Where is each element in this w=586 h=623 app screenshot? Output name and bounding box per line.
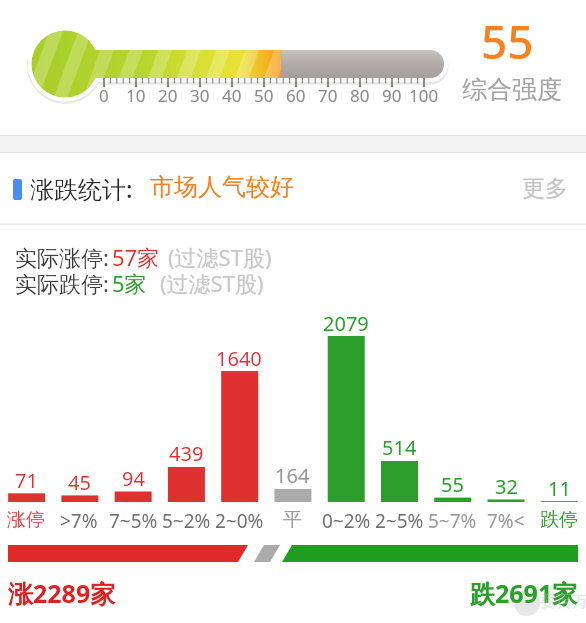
staticText: 50 — [254, 84, 274, 107]
staticText: 平 — [283, 508, 302, 532]
staticText: 1640 — [216, 345, 262, 372]
staticText: 32 — [495, 473, 518, 500]
staticText: 2~5% — [375, 508, 424, 534]
staticText: 55 — [441, 471, 464, 498]
staticText: 跌停 — [540, 508, 578, 532]
staticText: 40 — [222, 84, 242, 107]
staticText: 市场人气较好 — [150, 172, 294, 202]
staticText: 5~2% — [162, 508, 211, 534]
staticText: 80 — [350, 84, 370, 107]
staticText: 45 — [68, 469, 91, 496]
staticText: 0~2% — [322, 508, 371, 534]
staticText: 实际跌停: — [15, 268, 109, 298]
staticText: 跌2691家 — [470, 576, 578, 610]
staticText: 70 — [318, 84, 338, 107]
staticText: 57家 — [112, 242, 160, 272]
staticText: 要百万 — [540, 592, 586, 612]
staticText: 439 — [169, 440, 204, 467]
staticText: 30 — [190, 84, 210, 107]
staticText: 55 — [481, 10, 534, 73]
staticText: 100 — [409, 84, 439, 107]
staticText: 更多 — [522, 174, 568, 203]
staticText: (过滤ST股) — [160, 268, 264, 298]
staticText: 涨跌统计: — [30, 172, 133, 205]
staticText: 94 — [122, 465, 145, 492]
staticText: 涨2289家 — [8, 576, 116, 610]
button[interactable]: 更多 — [510, 168, 580, 208]
staticText: 90 — [382, 84, 402, 107]
staticText: 20 — [158, 84, 178, 107]
staticText: 164 — [275, 462, 310, 489]
staticText: 0 — [99, 84, 109, 107]
staticText: 5~7% — [428, 508, 477, 534]
staticText: 2~0% — [215, 508, 264, 534]
staticText: 7~5% — [109, 508, 158, 534]
staticText: 涨停 — [7, 508, 45, 532]
staticText: (过滤ST股) — [168, 242, 272, 272]
staticText: 10 — [126, 84, 146, 107]
staticText: 5家 — [112, 268, 147, 298]
staticText: 7%< — [487, 508, 525, 534]
staticText: 实际涨停: — [15, 242, 109, 272]
staticText: 60 — [286, 84, 306, 107]
staticText: 71 — [15, 467, 38, 494]
staticText: 514 — [382, 434, 417, 461]
staticText: 11 — [548, 475, 571, 502]
staticText: 综合强度 — [462, 74, 562, 105]
staticText: >7% — [60, 508, 98, 534]
staticText: 2079 — [323, 310, 369, 337]
